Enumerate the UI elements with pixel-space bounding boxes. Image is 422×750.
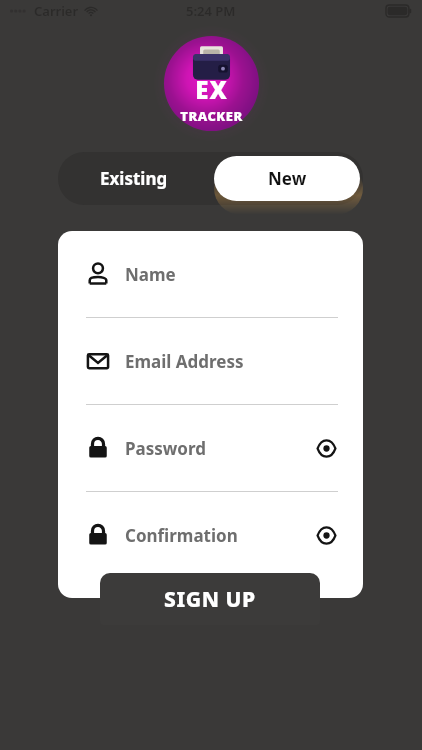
staticText: Password (125, 437, 311, 460)
button[interactable]: Toggle password visibility (311, 433, 341, 463)
staticText: Confirmation (125, 524, 311, 547)
staticText: EX (195, 73, 228, 106)
staticText: Name (125, 263, 341, 286)
staticText: Existing (100, 167, 168, 190)
button[interactable]: Confirmation (58, 492, 363, 578)
button[interactable]: SIGN UP (100, 573, 320, 625)
button[interactable]: Password (58, 405, 363, 491)
button[interactable]: Email Address (58, 318, 363, 404)
staticText: SIGN UP (164, 585, 256, 614)
button[interactable]: Existing (58, 152, 210, 205)
button[interactable]: New (214, 156, 360, 201)
staticText: Carrier (34, 2, 79, 20)
button[interactable]: Name (58, 231, 363, 317)
staticText: 5:24 PM (186, 2, 236, 20)
staticText: TRACKER (180, 107, 243, 125)
button[interactable]: Toggle password visibility (311, 520, 341, 550)
staticText: Email Address (125, 350, 341, 373)
staticText: New (268, 167, 307, 190)
